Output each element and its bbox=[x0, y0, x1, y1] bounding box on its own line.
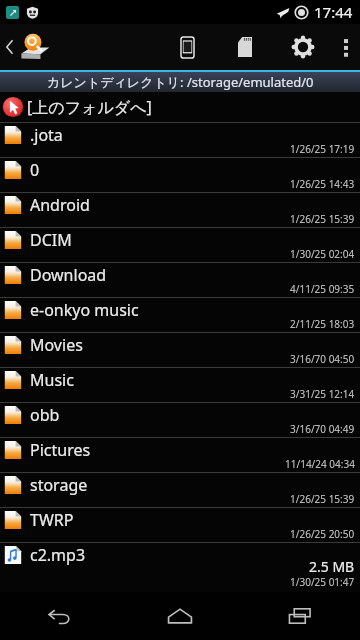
button[interactable]: Pictures bbox=[0, 437, 360, 472]
staticText: 1/30/25 02:04 bbox=[290, 247, 355, 261]
button[interactable]: 0 bbox=[0, 157, 360, 192]
button[interactable]: c2.mp3 bbox=[0, 542, 360, 577]
staticText: 3/16/70 04:49 bbox=[290, 422, 355, 436]
button[interactable]: Internal storage bbox=[167, 29, 208, 66]
staticText: [上のフォルダへ] bbox=[27, 96, 152, 118]
staticText: Android bbox=[30, 194, 280, 216]
button[interactable]: Back bbox=[0, 592, 120, 640]
staticText: 17:44 bbox=[314, 2, 353, 22]
staticText: 3/31/25 12:14 bbox=[290, 387, 355, 401]
button[interactable]: TWRP bbox=[0, 507, 360, 542]
staticText: 1/26/25 15:39 bbox=[290, 492, 355, 506]
staticText: DCIM bbox=[30, 229, 280, 251]
staticText: 1/26/25 20:50 bbox=[290, 527, 355, 541]
staticText: 0 bbox=[30, 159, 280, 181]
staticText: 1/26/25 17:19 bbox=[290, 142, 355, 156]
staticText: 3/16/70 04:50 bbox=[290, 352, 355, 366]
button[interactable]: Download bbox=[0, 262, 360, 297]
button[interactable]: Android bbox=[0, 192, 360, 227]
button[interactable]: Movies bbox=[0, 332, 360, 367]
button[interactable]: SD card bbox=[224, 29, 266, 65]
staticText: Pictures bbox=[30, 439, 280, 461]
button[interactable]: Home bbox=[120, 592, 240, 640]
button[interactable]: storage bbox=[0, 472, 360, 507]
button[interactable]: Settings bbox=[280, 28, 326, 66]
button[interactable]: Up bbox=[0, 32, 56, 62]
button[interactable]: .jota bbox=[0, 122, 360, 157]
staticText: 1/26/25 15:39 bbox=[290, 212, 355, 226]
staticText: Movies bbox=[30, 334, 280, 356]
staticText: e-onkyo music bbox=[30, 299, 280, 321]
button[interactable]: Recent apps bbox=[240, 592, 360, 640]
staticText: カレントディレクトリ: /storage/emulated/0 bbox=[47, 73, 314, 91]
staticText: storage bbox=[30, 474, 280, 496]
button[interactable]: Music bbox=[0, 367, 360, 402]
button[interactable]: [上のフォルダへ] bbox=[0, 92, 360, 122]
button[interactable]: obb bbox=[0, 402, 360, 437]
staticText: 2.5 MB bbox=[309, 557, 355, 576]
staticText: 1/26/25 14:43 bbox=[290, 177, 355, 191]
staticText: .jota bbox=[30, 124, 280, 146]
staticText: 1/30/25 01:47 bbox=[290, 575, 355, 589]
staticText: TWRP bbox=[30, 509, 280, 531]
staticText: Download bbox=[30, 264, 280, 286]
button[interactable]: DCIM bbox=[0, 227, 360, 262]
button[interactable]: e-onkyo music bbox=[0, 297, 360, 332]
button[interactable]: More options bbox=[332, 30, 360, 64]
staticText: 4/11/25 09:35 bbox=[290, 282, 355, 296]
staticText: obb bbox=[30, 404, 280, 426]
staticText: c2.mp3 bbox=[30, 544, 280, 566]
staticText: Music bbox=[30, 369, 280, 391]
staticText: 11/14/24 04:34 bbox=[285, 457, 355, 471]
staticText: 2/11/25 18:03 bbox=[290, 317, 355, 331]
